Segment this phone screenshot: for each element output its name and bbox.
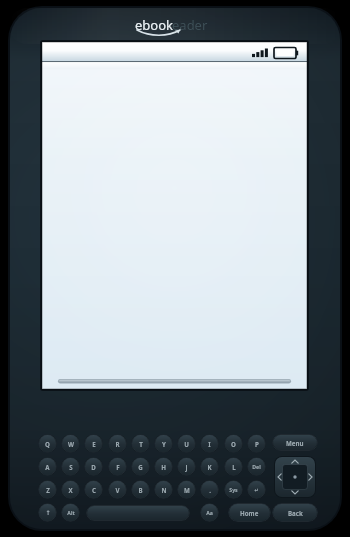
button[interactable]: Key B [131,480,150,499]
button[interactable]: Key Q [38,434,57,453]
staticText: J [185,463,188,471]
button[interactable]: Key R [108,434,127,453]
button[interactable]: Space [86,505,190,521]
staticText: . [209,486,211,494]
button[interactable]: Key V [108,480,127,499]
staticText: T [139,440,143,448]
button[interactable]: Key K [200,457,219,476]
button[interactable]: Key G [131,457,150,476]
button[interactable]: Key J [177,457,196,476]
staticText: ebook [135,16,173,34]
button[interactable]: Key H [154,457,173,476]
button[interactable]: Key W [61,434,80,453]
staticText: A [45,463,50,471]
staticText: Back [288,509,303,517]
staticText: Sys [229,486,238,493]
button[interactable]: Key Z [38,480,57,499]
staticText: ↑ [45,509,51,516]
button[interactable]: Key A [38,457,57,476]
staticText: O [231,440,236,448]
button[interactable]: Key O [224,434,243,453]
button[interactable]: Key ↑ [38,503,57,522]
button[interactable]: Directional pad [274,456,316,498]
staticText: F [116,463,120,471]
button[interactable]: Key P [247,434,266,453]
staticText: H [161,463,166,471]
staticText: X [68,486,73,494]
staticText: Del [252,463,261,470]
button[interactable]: Key Sys [224,480,243,499]
button[interactable]: Key S [61,457,80,476]
button[interactable]: Home [228,503,271,522]
staticText: R [115,440,120,448]
staticText: V [115,486,120,494]
button[interactable]: Key C [84,480,103,499]
staticText: K [207,463,212,471]
button[interactable]: Key Y [154,434,173,453]
staticText: I [208,440,211,448]
staticText: B [138,486,143,494]
staticText: Y [162,440,166,448]
staticText: U [184,440,189,448]
button[interactable]: Key X [61,480,80,499]
staticText: C [92,486,96,494]
staticText: ↵ [254,487,259,493]
staticText: eader [172,16,208,34]
staticText: Z [46,486,50,494]
button[interactable]: Back [272,503,318,522]
button[interactable]: Key I [200,434,219,453]
staticText: G [138,463,143,471]
button[interactable]: Key Del [247,457,266,476]
button[interactable]: Key Alt [61,503,80,522]
button[interactable]: Key ↵ [247,480,266,499]
button[interactable]: Key E [84,434,103,453]
staticText: E [92,440,96,448]
button[interactable]: Key F [108,457,127,476]
button[interactable]: Key M [177,480,196,499]
button[interactable]: Key T [131,434,150,453]
staticText: S [69,463,73,471]
staticText: Aa [206,509,213,516]
staticText: L [232,463,236,471]
staticText: W [68,440,74,448]
button[interactable]: Menu [272,434,318,451]
button[interactable]: Key U [177,434,196,453]
button[interactable]: Key . [200,480,219,499]
button[interactable]: Key L [224,457,243,476]
staticText: M [184,486,190,494]
button[interactable]: Key N [154,480,173,499]
staticText: P [255,440,259,448]
staticText: Home [240,509,259,517]
staticText: N [161,486,167,494]
staticText: D [91,463,96,471]
button[interactable]: Key Aa [200,503,219,522]
button[interactable]: Key D [84,457,103,476]
staticText: Menu [286,439,304,447]
staticText: Alt [67,509,75,516]
staticText: Q [45,440,50,448]
